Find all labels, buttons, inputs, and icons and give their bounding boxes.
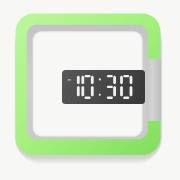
button[interactable]: Digital watch showing 10:30 (0, 0, 180, 180)
